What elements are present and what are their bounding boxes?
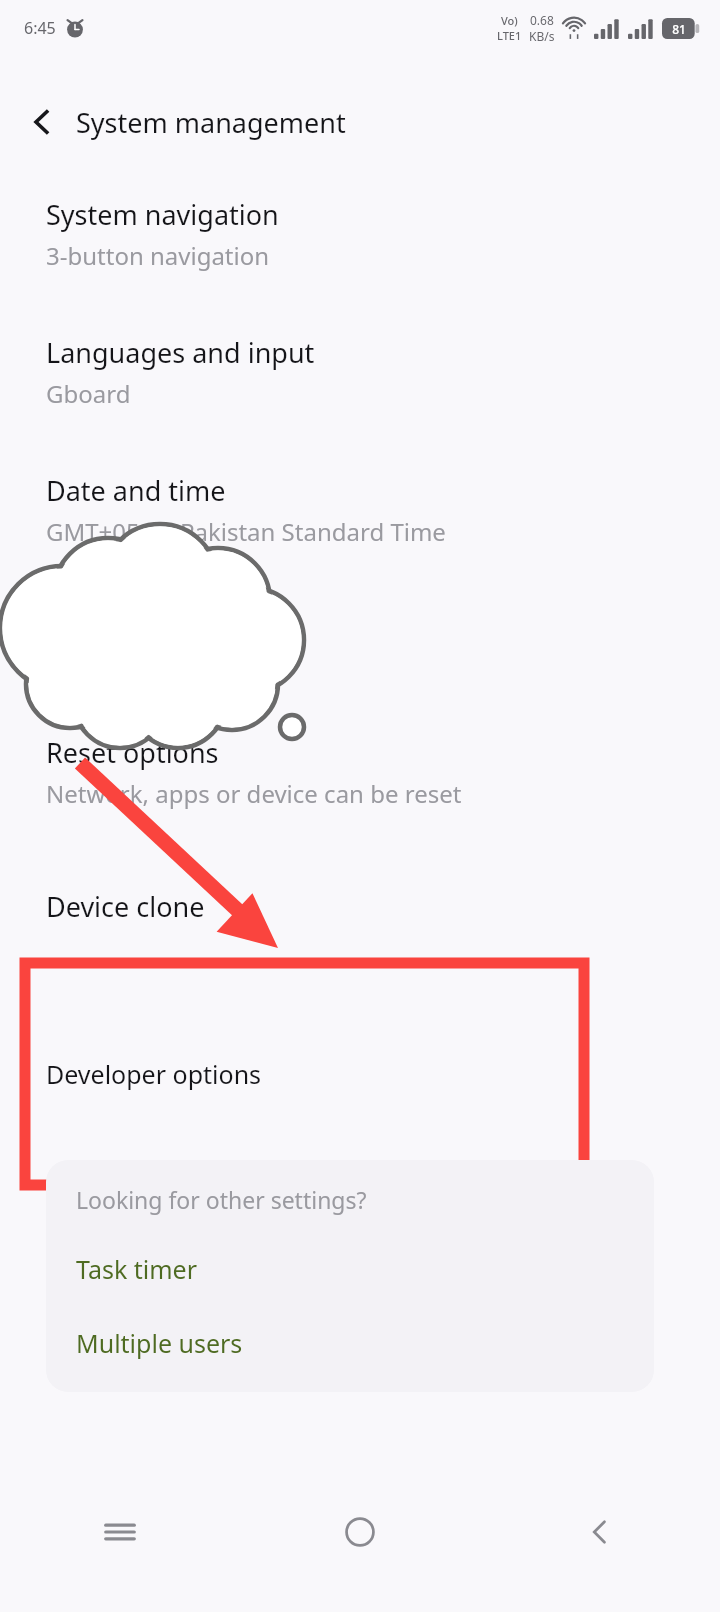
staticText: Reset options <box>46 734 219 771</box>
staticText: 81 <box>672 21 686 37</box>
staticText: 3-button navigation <box>46 239 270 272</box>
staticText: Looking for other settings? <box>76 1184 367 1215</box>
staticText: Multiple users <box>76 1326 243 1360</box>
button[interactable]: System navigation <box>0 196 720 296</box>
button[interactable]: Developer options <box>25 963 584 1185</box>
button[interactable]: Recent apps <box>0 1482 240 1582</box>
staticText: Task timer <box>76 1252 198 1286</box>
staticText: Gboard <box>46 377 131 410</box>
staticText: 0.68 <box>530 12 554 28</box>
button[interactable]: Date and time <box>0 472 720 572</box>
staticText: GMT+05:00 Pakistan Standard Time <box>46 515 446 548</box>
staticText: Date and time <box>46 472 226 509</box>
staticText: Developer options <box>46 1057 262 1091</box>
staticText: System navigation <box>46 196 279 233</box>
button[interactable]: Back <box>480 1482 720 1582</box>
staticText: KB/s <box>529 28 555 44</box>
staticText: Device clone <box>46 888 205 925</box>
button[interactable]: Reset options <box>0 734 720 834</box>
button[interactable]: Back <box>14 94 70 150</box>
button[interactable]: Multiple users <box>46 1317 654 1369</box>
staticText: LTE1 <box>497 28 522 43</box>
staticText: Vo) <box>501 13 518 28</box>
button[interactable]: Device clone <box>0 888 720 948</box>
staticText: Languages and input <box>46 334 315 371</box>
staticText: Network, apps or device can be reset <box>46 777 462 810</box>
button[interactable]: Task timer <box>46 1241 654 1297</box>
button[interactable]: Languages and input <box>0 334 720 434</box>
button[interactable]: Home <box>240 1482 480 1582</box>
staticText: System management <box>76 104 346 141</box>
staticText: 6:45 <box>24 17 56 39</box>
